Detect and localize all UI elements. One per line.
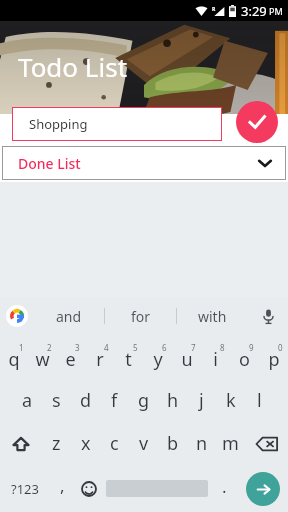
staticText: r	[96, 347, 104, 372]
staticText: l	[257, 388, 262, 413]
staticText: g	[138, 388, 150, 413]
button[interactable]: ?123	[0, 465, 49, 512]
staticText: b	[167, 431, 179, 456]
staticText: z	[52, 431, 61, 456]
button[interactable]: j	[187, 379, 216, 422]
button[interactable]: y	[143, 335, 172, 379]
button[interactable]: m	[216, 422, 245, 465]
staticText: R	[212, 6, 216, 13]
staticText: i	[213, 347, 218, 372]
staticText: x	[81, 431, 91, 456]
staticText: Shopping	[29, 115, 88, 133]
button[interactable]: and	[34, 297, 104, 335]
staticText: n	[196, 431, 208, 456]
staticText: .	[222, 475, 227, 498]
button[interactable]: k	[216, 379, 245, 422]
staticText: 3	[75, 342, 80, 353]
button[interactable]: Done List	[2, 146, 286, 180]
button[interactable]: l	[245, 379, 274, 422]
button[interactable]: Enter	[246, 472, 280, 506]
button[interactable]: d	[71, 379, 100, 422]
button[interactable]: s	[42, 379, 71, 422]
button[interactable]: Space	[103, 465, 211, 512]
button[interactable]: b	[158, 422, 187, 465]
button[interactable]: t	[114, 335, 143, 379]
staticText: ,	[60, 474, 65, 497]
button[interactable]: h	[158, 379, 187, 422]
button[interactable]: g	[129, 379, 158, 422]
button[interactable]: f	[100, 379, 129, 422]
staticText: o	[239, 347, 250, 372]
button[interactable]: u	[172, 335, 201, 379]
staticText: h	[167, 388, 179, 413]
staticText: 0	[278, 342, 283, 353]
staticText: with	[198, 307, 227, 326]
staticText: 7	[191, 342, 196, 353]
button[interactable]: Voice input	[248, 297, 288, 335]
staticText: y	[153, 347, 163, 372]
button[interactable]: o	[230, 335, 259, 379]
staticText: t	[125, 347, 132, 372]
button[interactable]: .	[211, 465, 237, 512]
staticText: 5	[133, 342, 138, 353]
button[interactable]: e	[56, 335, 85, 379]
staticText: for	[131, 307, 151, 326]
button[interactable]: Emoji	[75, 465, 103, 512]
staticText: Done List	[18, 154, 81, 173]
button[interactable]: v	[129, 422, 158, 465]
button[interactable]: r	[85, 335, 114, 379]
staticText: e	[65, 347, 76, 372]
staticText: ?123	[11, 480, 39, 498]
staticText: v	[139, 431, 149, 456]
staticText: 2	[47, 342, 52, 353]
staticText: u	[181, 347, 193, 372]
staticText: 9	[249, 342, 254, 353]
button[interactable]: c	[100, 422, 129, 465]
button[interactable]: x	[71, 422, 100, 465]
staticText: 1	[19, 342, 24, 353]
button[interactable]: n	[187, 422, 216, 465]
staticText: PM	[269, 5, 283, 17]
staticText: j	[199, 388, 204, 413]
staticText: 6	[162, 342, 167, 353]
button[interactable]: with	[177, 297, 248, 335]
button[interactable]: w	[28, 335, 56, 379]
button[interactable]: ,	[49, 465, 75, 512]
button[interactable]: Shopping	[12, 107, 222, 141]
button[interactable]: Shift	[0, 422, 42, 465]
button[interactable]: Add todo	[236, 101, 278, 143]
staticText: 4	[104, 342, 109, 353]
staticText: 3:29	[241, 2, 267, 20]
button[interactable]: for	[105, 297, 176, 335]
staticText: s	[52, 388, 61, 413]
staticText: and	[56, 307, 82, 326]
staticText: f	[111, 388, 118, 413]
staticText: w	[35, 347, 50, 372]
staticText: p	[268, 347, 280, 372]
staticText: k	[226, 388, 236, 413]
button[interactable]: i	[201, 335, 230, 379]
button[interactable]: q	[0, 335, 28, 379]
staticText: 8	[220, 342, 225, 353]
button[interactable]	[0, 297, 34, 335]
button[interactable]: a	[13, 379, 42, 422]
staticText: c	[110, 431, 119, 456]
staticText: m	[222, 431, 239, 456]
staticText: a	[22, 388, 33, 413]
button[interactable]: z	[42, 422, 71, 465]
staticText: q	[8, 347, 20, 372]
staticText: d	[80, 388, 92, 413]
button[interactable]: Backspace	[245, 422, 288, 465]
button[interactable]: p	[259, 335, 288, 379]
staticText: Todo List	[18, 49, 128, 84]
